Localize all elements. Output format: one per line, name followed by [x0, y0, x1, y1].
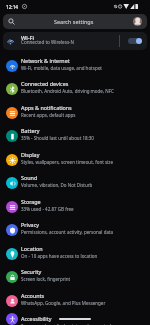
- staticText: Privacy: [21, 221, 39, 228]
- staticText: Connected devices: [21, 80, 69, 87]
- button[interactable]: Battery: [0, 124, 150, 148]
- staticText: Location: [21, 245, 43, 252]
- staticText: Screen readers, display, interaction con…: [21, 323, 114, 325]
- button[interactable]: Security: [0, 265, 150, 289]
- button[interactable]: Connected devices: [0, 77, 150, 101]
- button[interactable]: Display: [0, 148, 150, 171]
- staticText: Recent apps, default apps: [21, 112, 76, 118]
- staticText: Battery: [21, 127, 40, 134]
- button[interactable]: Account: [133, 17, 142, 26]
- button[interactable]: Apps & notifications: [0, 101, 150, 124]
- button[interactable]: Search settings: [3, 14, 147, 29]
- button[interactable]: Accounts: [0, 289, 150, 312]
- staticText: Bluetooth, Android Auto, driving mode, N…: [21, 88, 114, 94]
- button[interactable]: Sound: [0, 171, 150, 195]
- button[interactable]: Network & internet: [0, 54, 150, 77]
- staticText: WhatsApp, Google, and Plus Messenger: [21, 300, 106, 306]
- staticText: 12:14: [6, 4, 19, 10]
- staticText: Connected to Wireless-N: [21, 39, 75, 45]
- staticText: Accessibility: [21, 315, 52, 322]
- button[interactable]: Location: [0, 242, 150, 265]
- staticText: Wi-Fi: [21, 34, 35, 42]
- staticText: Screen lock, fingerprint: [21, 276, 71, 282]
- staticText: Volume, vibration, Do Not Disturb: [21, 182, 93, 188]
- button[interactable]: Wi-Fi: [3, 32, 147, 50]
- staticText: 35% - Should last until about 18:30: [21, 135, 94, 141]
- staticText: Styles, wallpapers, screen timeout, font…: [21, 159, 113, 165]
- staticText: 33% used - 42.87 GB free: [21, 206, 74, 212]
- staticText: Wi-Fi, mobile, data usage, and hotspot: [21, 65, 102, 71]
- staticText: Permissions, account activity, personal …: [21, 229, 114, 235]
- staticText: Security: [21, 268, 42, 275]
- staticText: Apps & notifications: [21, 104, 72, 111]
- button[interactable]: Accessibility: [0, 312, 150, 325]
- staticText: Accounts: [21, 292, 45, 299]
- button[interactable]: Storage: [0, 195, 150, 218]
- staticText: Display: [21, 151, 40, 158]
- button[interactable]: Privacy: [0, 218, 150, 242]
- staticText: Storage: [21, 198, 41, 205]
- button[interactable]: Wi-Fi toggle: [128, 38, 142, 44]
- staticText: Network & internet: [21, 57, 70, 64]
- staticText: Sound: [21, 174, 38, 181]
- staticText: On - 10 apps have access to location: [21, 253, 98, 259]
- staticText: Search settings: [54, 18, 94, 25]
